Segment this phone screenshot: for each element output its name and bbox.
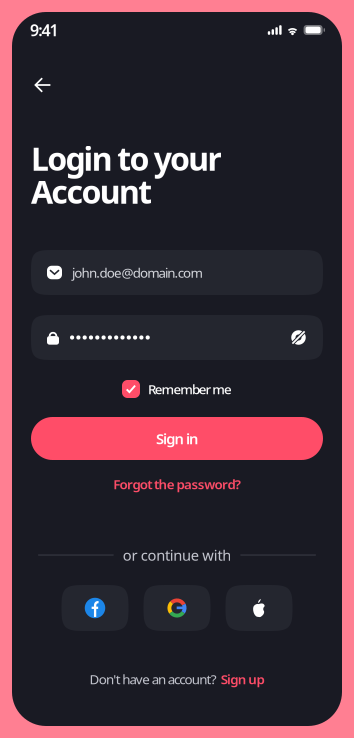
staticText: Account bbox=[31, 170, 152, 212]
staticText: Don't have an account? bbox=[89, 670, 217, 688]
button[interactable]: Sign up bbox=[221, 670, 264, 688]
button[interactable]: Continue with Facebook bbox=[61, 585, 128, 631]
staticText: 9:41 bbox=[30, 19, 59, 41]
staticText: john.doe@domain.com bbox=[72, 264, 202, 281]
button[interactable]: Continue with Apple bbox=[225, 585, 292, 631]
staticText: Forgot the password? bbox=[113, 475, 241, 493]
staticText: Sign up bbox=[221, 670, 264, 688]
staticText: Remember me bbox=[148, 380, 232, 398]
button[interactable]: Forgot the password? bbox=[12, 473, 342, 495]
button[interactable]: Remember me bbox=[122, 379, 232, 399]
staticText: Sign in bbox=[156, 429, 198, 448]
button[interactable]: Sign in bbox=[31, 417, 323, 460]
button[interactable]: Back bbox=[26, 68, 60, 102]
staticText: or continue with bbox=[123, 545, 231, 565]
button[interactable]: Show password bbox=[290, 329, 307, 346]
staticText: Login to your bbox=[31, 137, 221, 179]
button[interactable]: Continue with Google bbox=[143, 585, 210, 631]
